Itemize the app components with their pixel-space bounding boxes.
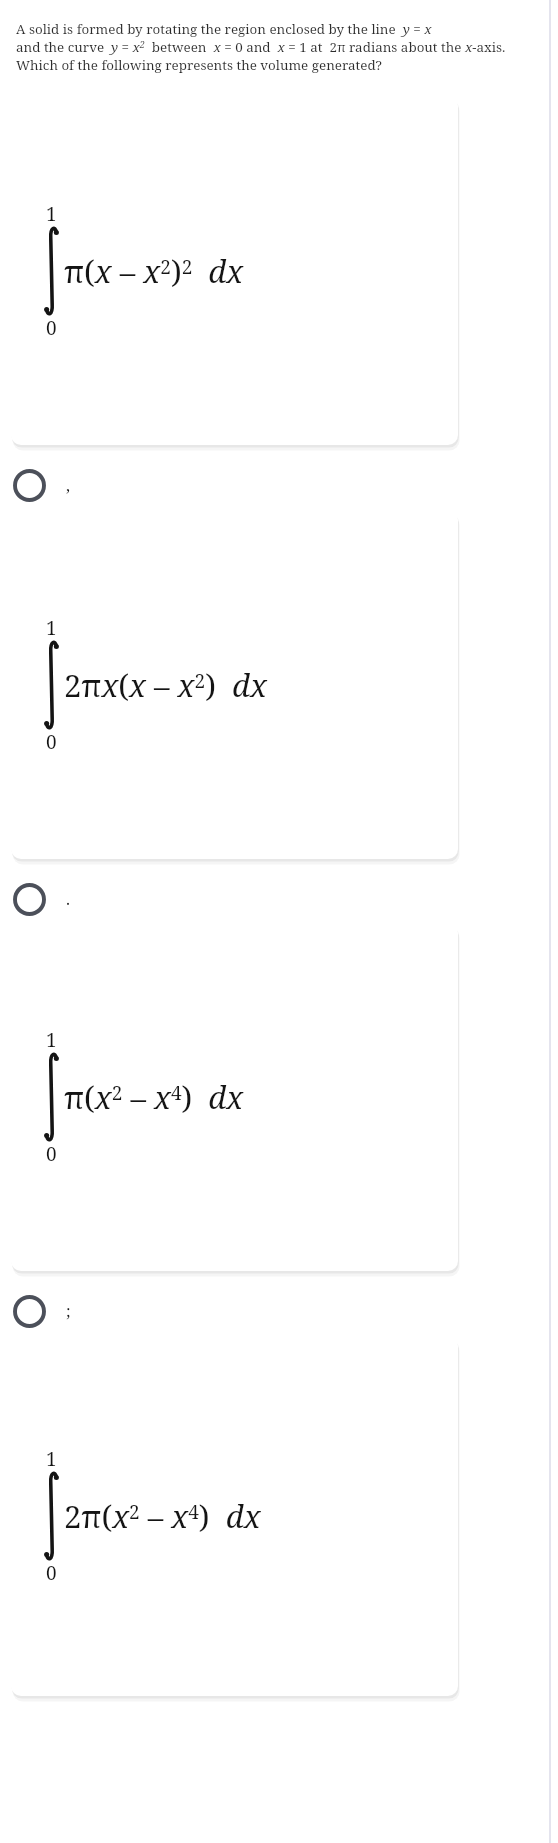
staticText: 1 [46, 1027, 57, 1053]
staticText: 2π(x2 – x4) dx [64, 1495, 261, 1537]
staticText: Which of the following represents the vo… [16, 56, 382, 74]
staticText: ; [66, 1300, 71, 1322]
staticText: and the curve y = x2 between x = 0 and x… [16, 38, 506, 56]
staticText: 0 [46, 1560, 57, 1586]
button[interactable]: 1 [11, 923, 458, 1271]
staticText: 0 [46, 1141, 57, 1167]
staticText: A solid is formed by rotating the region… [16, 20, 432, 38]
staticText: 0 [46, 315, 57, 341]
staticText: 1 [46, 1446, 57, 1472]
button[interactable]: 1 [11, 96, 458, 445]
staticText: , [66, 474, 71, 496]
button[interactable]: 1 [11, 1336, 458, 1696]
button[interactable]: Select this answer option [0, 463, 558, 507]
staticText: π(x2 – x4) dx [64, 1076, 244, 1118]
button[interactable]: Select this answer option [0, 1289, 558, 1333]
staticText: 1 [46, 201, 57, 227]
button[interactable]: 1 [11, 510, 458, 859]
button[interactable]: Select this answer option [0, 877, 558, 921]
staticText: π(x – x2)2 dx [64, 250, 244, 292]
staticText: 2πx(x – x2) dx [64, 664, 267, 706]
staticText: . [66, 888, 71, 910]
staticText: 1 [46, 615, 57, 641]
staticText: 0 [46, 729, 57, 755]
